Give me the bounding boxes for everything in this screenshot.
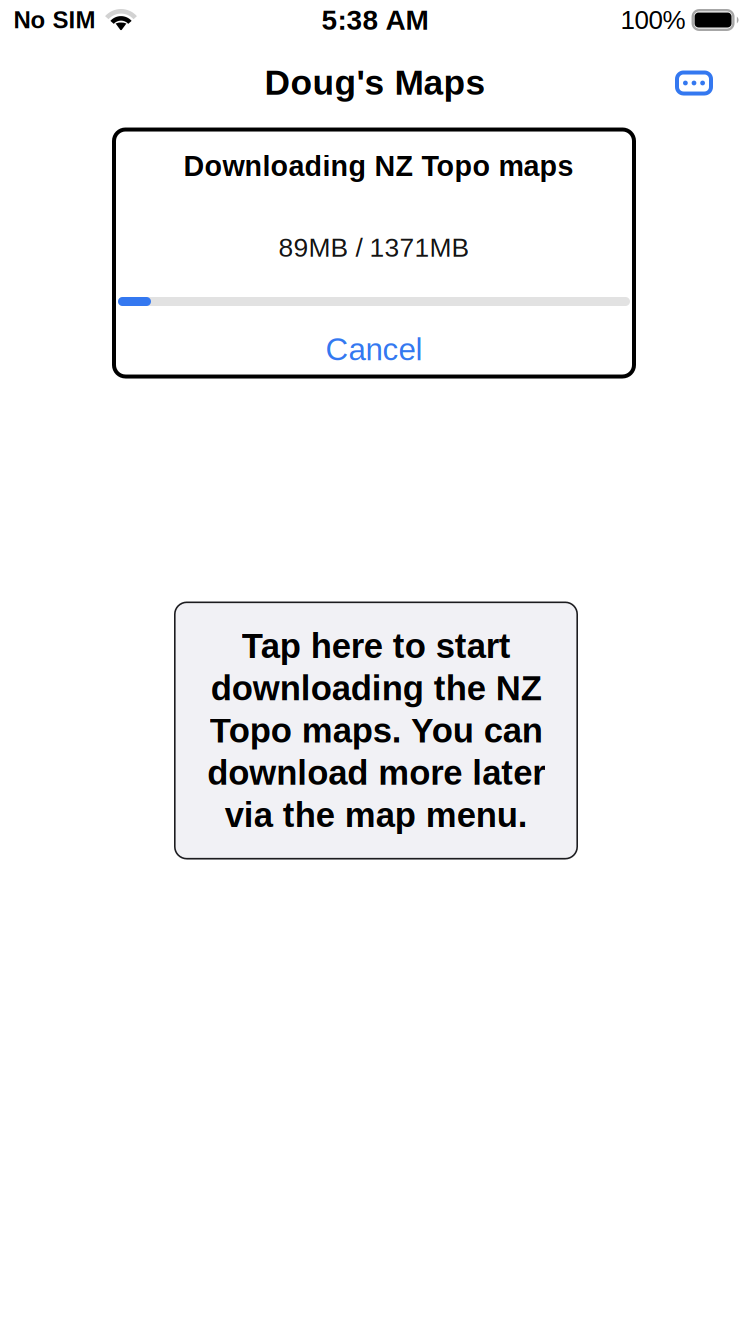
- staticText: 89MB / 1371MB: [278, 233, 469, 262]
- staticText: 100%: [620, 5, 685, 34]
- staticText: 5:38 AM: [321, 4, 428, 36]
- staticText: Cancel: [325, 332, 422, 367]
- staticText: Tap here to start downloading the NZ Top…: [207, 627, 545, 834]
- staticText: No SIM: [13, 7, 95, 33]
- button[interactable]: More: [665, 60, 723, 106]
- button[interactable]: Cancel: [144, 320, 604, 378]
- button[interactable]: Tap here to start downloading the NZ Top…: [174, 601, 578, 859]
- staticText: Downloading NZ Topo maps: [183, 150, 573, 182]
- staticText: Doug's Maps: [264, 63, 485, 102]
